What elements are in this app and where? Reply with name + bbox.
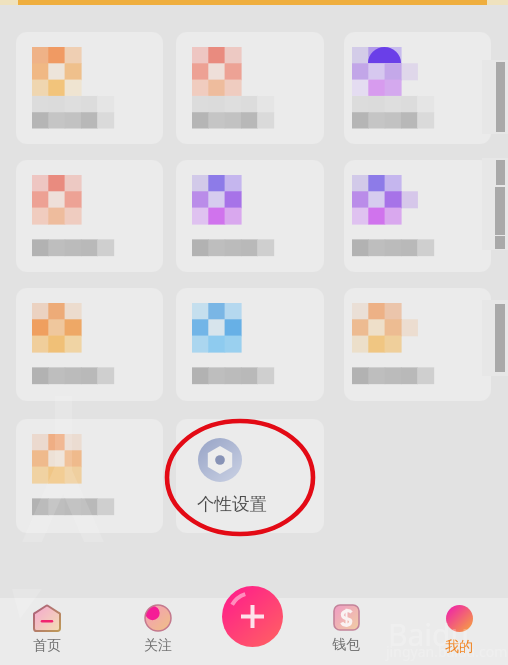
button[interactable] (16, 32, 163, 144)
button[interactable] (16, 419, 163, 533)
button[interactable] (16, 288, 163, 401)
button[interactable] (344, 288, 491, 401)
staticText: 钱包 (332, 636, 360, 654)
button[interactable] (176, 288, 324, 401)
button[interactable] (16, 160, 163, 272)
staticText: 个性设置 (197, 493, 267, 515)
button[interactable] (344, 32, 491, 144)
staticText: 关注 (144, 637, 172, 655)
button[interactable] (176, 32, 324, 144)
button[interactable]: 钱包 (310, 600, 382, 660)
staticText: 首页 (33, 637, 61, 655)
button[interactable]: Add (222, 586, 283, 647)
button[interactable] (344, 160, 491, 272)
staticText: jingyan.baidu.com (386, 642, 508, 661)
button[interactable] (176, 160, 324, 272)
button[interactable]: 我的 (423, 600, 495, 660)
button[interactable]: 关注 (122, 600, 194, 660)
button[interactable]: 个性设置 (176, 419, 324, 533)
staticText: Baidu (388, 614, 470, 655)
button[interactable]: 首页 (11, 600, 83, 660)
staticText: 我的 (445, 638, 473, 656)
